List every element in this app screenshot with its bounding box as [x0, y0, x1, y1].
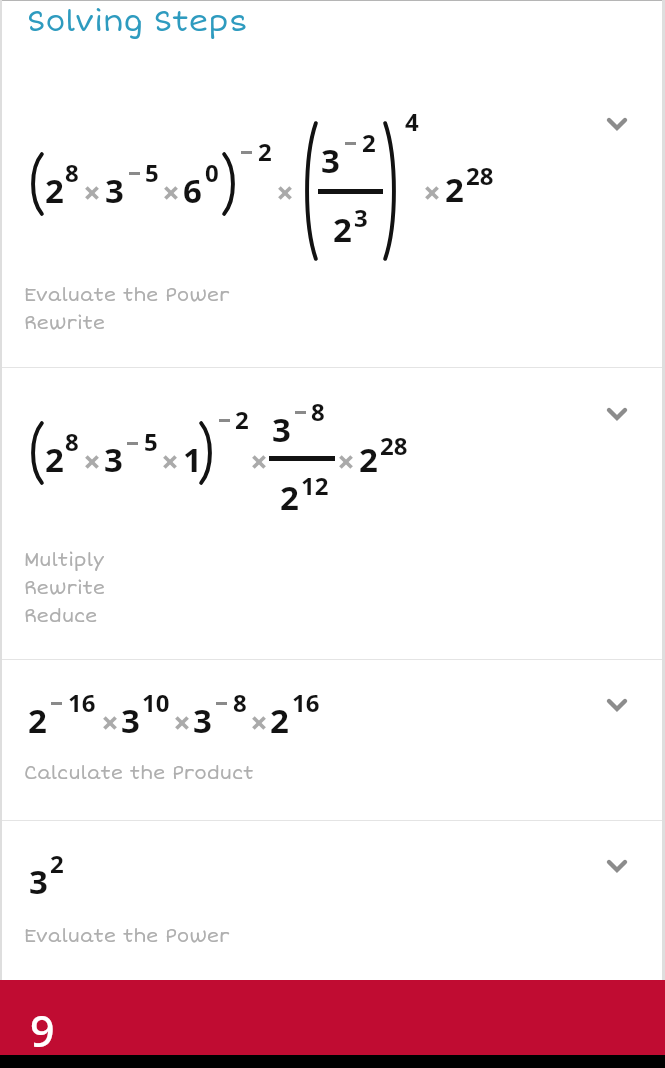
staticText: 2	[45, 168, 64, 213]
staticText: 3	[354, 201, 368, 234]
staticText: 3	[29, 859, 48, 904]
staticText: 5	[144, 425, 158, 458]
staticText: Rewrite	[24, 577, 106, 600]
staticText: 16	[68, 686, 96, 719]
staticText: Evaluate the Power	[24, 925, 230, 948]
staticText: Rewrite	[24, 312, 106, 335]
button[interactable]: 2	[0, 55, 665, 367]
button[interactable]: 2	[0, 368, 665, 659]
staticText: 10	[142, 686, 170, 719]
staticText: 2	[50, 847, 64, 880]
staticText: 2	[45, 437, 64, 482]
staticText: 28	[380, 429, 408, 462]
staticText: 28	[466, 159, 494, 192]
staticText: 5	[145, 156, 159, 189]
staticText: 2	[362, 126, 376, 159]
staticText: 1	[183, 437, 202, 482]
staticText: 2	[359, 437, 378, 482]
staticText: 2	[333, 207, 352, 252]
staticText: 3	[193, 698, 212, 743]
staticText: 2	[270, 698, 289, 743]
button[interactable]: 2	[0, 660, 665, 820]
button[interactable]: Expand step 2	[591, 388, 643, 440]
staticText: 0	[205, 156, 219, 189]
staticText: 3	[105, 168, 124, 213]
staticText: 3	[321, 138, 340, 183]
staticText: 2	[235, 403, 249, 436]
staticText: 8	[311, 395, 325, 428]
staticText: 8	[65, 156, 79, 189]
staticText: 3	[121, 698, 140, 743]
staticText: Solving Steps	[27, 3, 249, 39]
staticText: Reduce	[24, 605, 98, 628]
staticText: 2	[445, 167, 464, 212]
button[interactable]: Expand step 1	[591, 98, 643, 150]
staticText: 2	[258, 135, 272, 168]
staticText: 3	[272, 407, 291, 452]
staticText: 8	[233, 686, 247, 719]
staticText: 16	[292, 686, 320, 719]
button[interactable]: Expand step 4	[591, 840, 643, 892]
staticText: 9	[30, 1001, 55, 1060]
staticText: Evaluate the Power	[24, 284, 230, 307]
staticText: 2	[28, 698, 47, 743]
staticText: Multiply	[24, 549, 104, 572]
staticText: 8	[65, 425, 79, 458]
staticText: 4	[405, 105, 419, 138]
button[interactable]: Expand step 3	[591, 679, 643, 731]
staticText: Calculate the Product	[24, 762, 254, 785]
staticText: 6	[183, 168, 202, 213]
staticText: 12	[301, 469, 329, 502]
button[interactable]: 3	[0, 821, 665, 980]
staticText: 3	[104, 437, 123, 482]
staticText: 2	[280, 475, 299, 520]
